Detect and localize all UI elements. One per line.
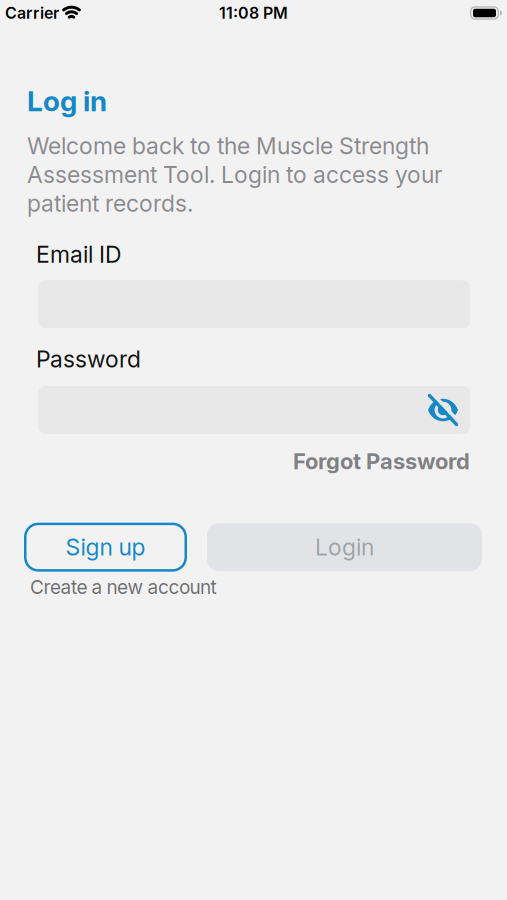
staticText: Sign up bbox=[65, 533, 145, 561]
staticText: Login bbox=[315, 533, 374, 561]
staticText: Log in bbox=[27, 84, 107, 118]
staticText: Carrier bbox=[5, 3, 59, 23]
staticText: Create a new account bbox=[30, 576, 216, 599]
button[interactable] bbox=[428, 397, 470, 423]
staticText: Password bbox=[36, 345, 141, 373]
staticText: Email ID bbox=[36, 240, 121, 268]
staticText: Forgot Password bbox=[293, 448, 470, 475]
button[interactable]: Login bbox=[207, 523, 482, 571]
button[interactable] bbox=[38, 386, 470, 434]
staticText: 11:08 PM bbox=[219, 3, 288, 23]
button[interactable]: Sign up bbox=[24, 523, 187, 572]
staticText: Welcome back to the Muscle Strength Asse… bbox=[27, 132, 442, 217]
button[interactable]: Forgot Password bbox=[293, 448, 470, 475]
